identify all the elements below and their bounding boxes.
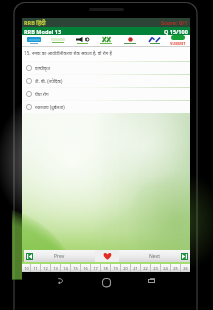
button[interactable]: वाष्पीकृत bbox=[22, 62, 190, 74]
staticText: 25 bbox=[173, 266, 178, 271]
button[interactable]: Back bbox=[54, 274, 67, 287]
staticText: 17 bbox=[93, 266, 98, 271]
button[interactable]: 11 bbox=[31, 264, 40, 272]
button[interactable]: 12 bbox=[41, 264, 50, 272]
button[interactable]: 25 bbox=[171, 264, 180, 272]
button[interactable]: 16 bbox=[81, 264, 90, 272]
staticText: 10 bbox=[24, 266, 29, 271]
button[interactable]: Exit Safe bbox=[142, 35, 166, 46]
staticText: 21 bbox=[133, 266, 138, 271]
staticText: Score: 0/1 bbox=[161, 19, 188, 26]
staticText: घेंघा रोग bbox=[35, 91, 49, 97]
button[interactable]: 14 bbox=[61, 264, 70, 272]
button[interactable]: 20 bbox=[121, 264, 130, 272]
staticText: 14 bbox=[63, 266, 68, 271]
staticText: Next bbox=[149, 253, 160, 260]
staticText: 18 bbox=[103, 266, 108, 271]
button[interactable]: 26 bbox=[181, 264, 190, 272]
button[interactable]: 10 bbox=[22, 264, 30, 272]
staticText: 22 bbox=[143, 266, 148, 271]
staticText: RRB Model 13 bbox=[24, 28, 62, 35]
button[interactable]: 21 bbox=[131, 264, 140, 272]
staticText: 15 bbox=[73, 266, 78, 271]
button[interactable]: Prev bbox=[24, 250, 95, 262]
staticText: टी. बी. (तपेदिक) bbox=[35, 78, 63, 84]
staticText: 15. नमक का आयोडीनीकरण रोक सकता है, वो रो… bbox=[24, 50, 112, 56]
button[interactable]: Next bbox=[119, 250, 190, 262]
staticText: रक्तचाप (दुर्बलता) bbox=[35, 104, 65, 110]
button[interactable]: Bookmark bbox=[94, 35, 118, 46]
button[interactable]: 23 bbox=[151, 264, 160, 272]
staticText: Prev bbox=[54, 253, 65, 260]
button[interactable]: Submit bbox=[166, 35, 190, 46]
button[interactable]: 24 bbox=[161, 264, 170, 272]
button[interactable]: Sound bbox=[70, 35, 94, 46]
button[interactable]: Recents bbox=[145, 274, 158, 287]
staticText: 23 bbox=[153, 266, 158, 271]
staticText: 13 bbox=[53, 266, 58, 271]
button[interactable]: Home bbox=[100, 274, 113, 287]
staticText: 20 bbox=[123, 266, 128, 271]
staticText: SUBMIT bbox=[170, 41, 186, 46]
staticText: 12 bbox=[43, 266, 48, 271]
button[interactable]: Favourite bbox=[95, 250, 119, 262]
button[interactable]: Options bbox=[22, 35, 46, 46]
button[interactable]: Report bbox=[46, 35, 70, 46]
staticText: 24 bbox=[163, 266, 168, 271]
button[interactable]: घेंघा रोग bbox=[22, 88, 190, 100]
button[interactable]: 18 bbox=[101, 264, 110, 272]
staticText: RRB हिंदी bbox=[24, 19, 46, 26]
button[interactable]: 22 bbox=[141, 264, 150, 272]
staticText: 26 bbox=[183, 266, 188, 271]
staticText: 19 bbox=[113, 266, 118, 271]
button[interactable]: 17 bbox=[91, 264, 100, 272]
button[interactable]: टी. बी. (तपेदिक) bbox=[22, 75, 190, 87]
button[interactable]: 15 bbox=[71, 264, 80, 272]
staticText: वाष्पीकृत bbox=[35, 65, 51, 71]
button[interactable]: Favourite bbox=[118, 35, 142, 46]
staticText: Q 15/100 bbox=[164, 28, 188, 35]
button[interactable]: 19 bbox=[111, 264, 120, 272]
button[interactable]: रक्तचाप (दुर्बलता) bbox=[22, 101, 190, 113]
button[interactable]: 13 bbox=[51, 264, 60, 272]
staticText: 11 bbox=[33, 266, 38, 271]
staticText: 16 bbox=[83, 266, 88, 271]
